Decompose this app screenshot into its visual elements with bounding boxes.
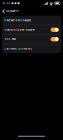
staticText: Nastavení bbox=[6, 9, 19, 13]
button[interactable]: 360 zvuk bbox=[2, 35, 61, 44]
button[interactable]: Snadné připojení sluchátek bbox=[2, 25, 61, 34]
button[interactable]: Nastavení bbox=[0, 7, 21, 15]
staticText: 10:30 bbox=[2, 2, 10, 5]
staticText: Používám Body Nasazení bbox=[4, 19, 31, 22]
button[interactable]: Používám Body Nasazení bbox=[2, 16, 61, 25]
staticText: 360 zvuk bbox=[4, 38, 15, 41]
staticText: Zajímavosti pro neslyšící bbox=[4, 47, 32, 50]
staticText: Snadné připojení sluchátek bbox=[4, 28, 34, 31]
button[interactable]: Zajímavosti pro neslyšící bbox=[2, 44, 61, 53]
